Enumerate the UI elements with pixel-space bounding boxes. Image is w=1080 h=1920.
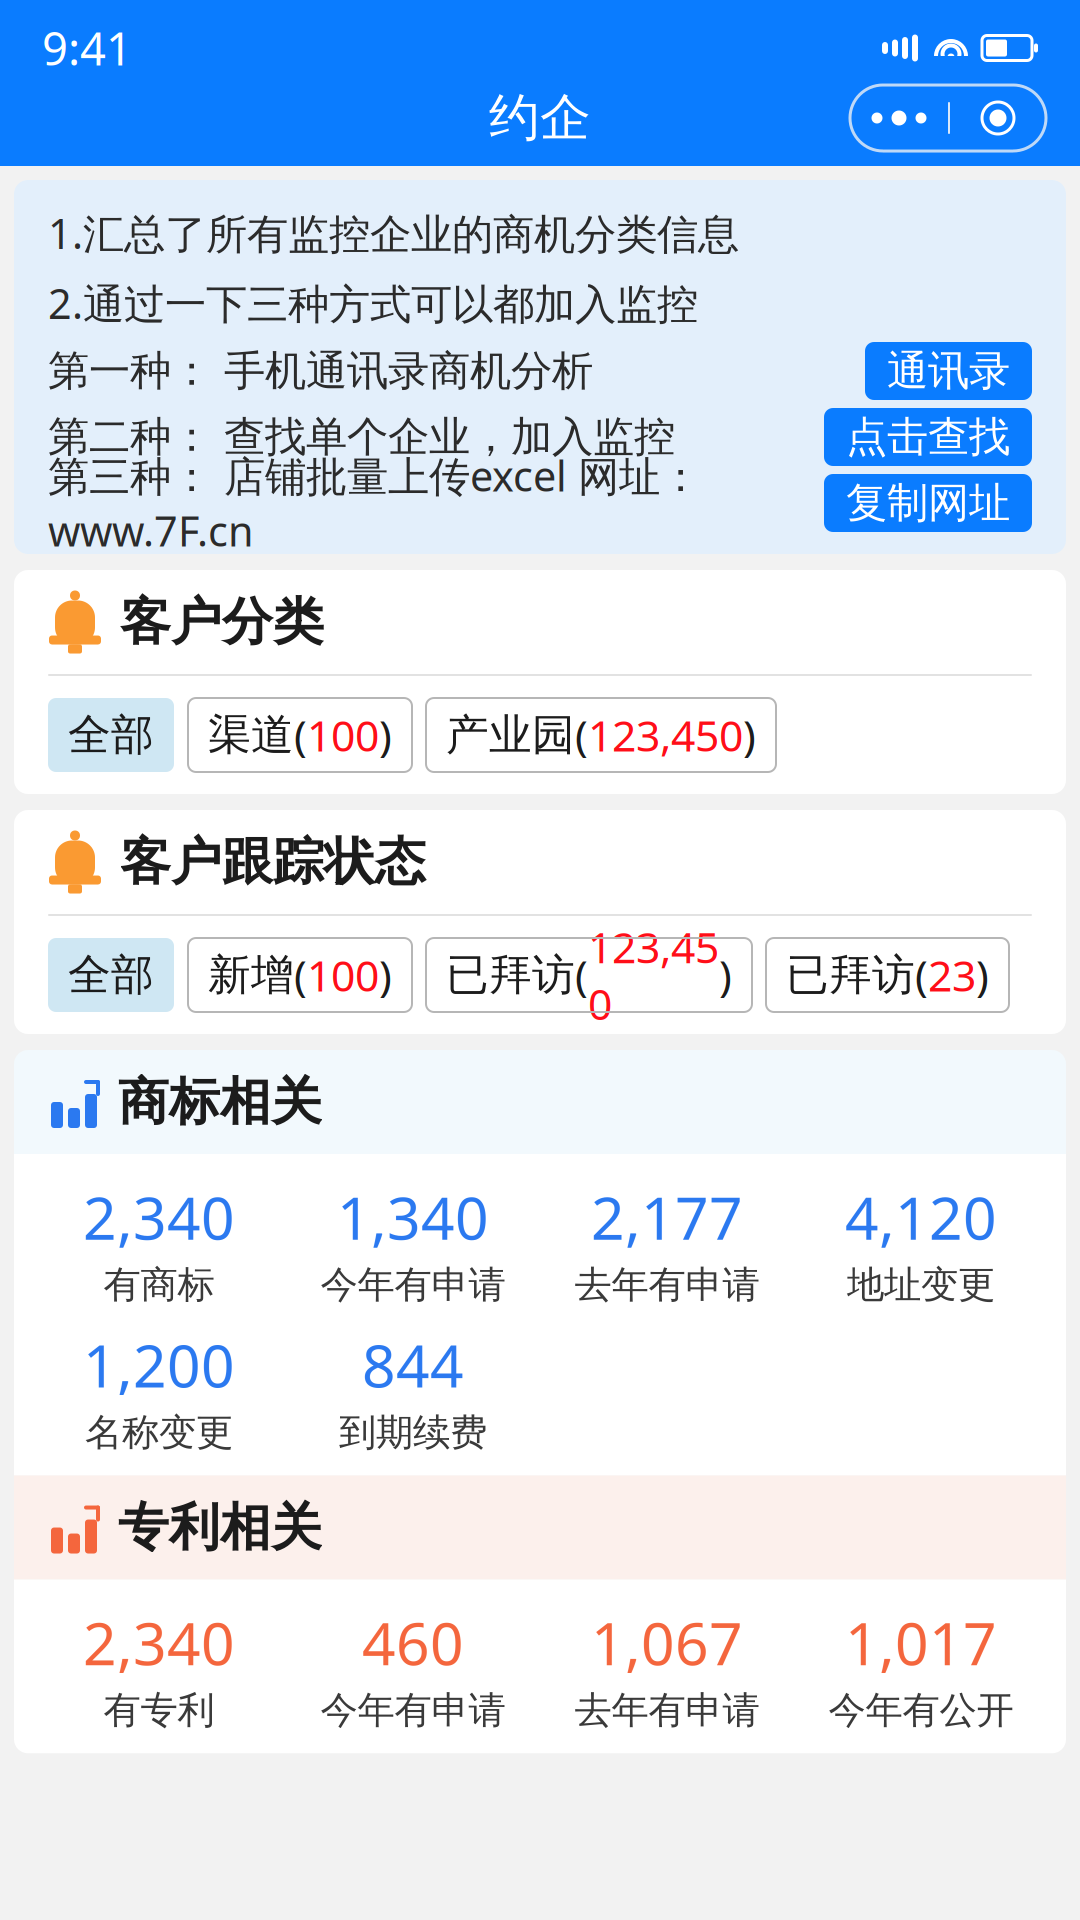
- button[interactable]: 全部: [48, 698, 174, 772]
- staticText: ): [976, 947, 989, 1003]
- staticText: 1.汇总了所有监控企业的商机分类信息: [48, 206, 739, 260]
- staticText: 通讯录: [887, 346, 1010, 396]
- staticText: 全部: [68, 949, 154, 1001]
- button[interactable]: 已拜访: [766, 938, 1009, 1012]
- staticText: 第三种： 店铺批量上传excel 网址： www.7F.cn: [48, 448, 701, 558]
- button[interactable]: Target: [950, 85, 1046, 151]
- button[interactable]: 通讯录: [865, 342, 1032, 400]
- staticText: 第二种： 查找单个企业，加入监控: [48, 412, 675, 462]
- staticText: 9:41: [42, 18, 132, 78]
- staticText: 2,340: [83, 1178, 235, 1256]
- button[interactable]: 产业园: [426, 698, 776, 772]
- staticText: 1,017: [845, 1603, 997, 1681]
- staticText: 100: [307, 947, 379, 1003]
- staticText: 1,340: [337, 1178, 489, 1256]
- button[interactable]: 全部: [48, 938, 174, 1012]
- staticText: 新增: [208, 949, 294, 1001]
- staticText: 460: [362, 1603, 464, 1681]
- staticText: 到期续费: [339, 1410, 487, 1456]
- staticText: 2.通过一下三种方式可以都加入监控: [48, 276, 698, 330]
- staticText: 有专利: [103, 1687, 214, 1733]
- staticText: ): [379, 947, 392, 1003]
- staticText: 渠道: [208, 709, 294, 761]
- staticText: 去年有申请: [574, 1687, 759, 1733]
- staticText: ): [743, 707, 756, 763]
- staticText: ): [719, 947, 732, 1003]
- staticText: 点击查找: [846, 412, 1010, 462]
- staticText: (: [294, 707, 307, 763]
- staticText: 今年有申请: [320, 1687, 505, 1733]
- staticText: 约企: [489, 87, 591, 149]
- staticText: 已拜访: [446, 949, 575, 1001]
- staticText: (: [915, 947, 928, 1003]
- staticText: 客户分类: [120, 591, 324, 653]
- button[interactable]: More: [850, 85, 948, 151]
- staticText: 2,177: [591, 1178, 743, 1256]
- staticText: (: [294, 947, 307, 1003]
- button[interactable]: 已拜访: [426, 938, 752, 1012]
- button[interactable]: 新增: [188, 938, 412, 1012]
- staticText: 1,067: [591, 1603, 743, 1681]
- staticText: 123,450: [588, 918, 719, 1032]
- staticText: 商标相关: [118, 1071, 322, 1133]
- staticText: 全部: [68, 709, 154, 761]
- staticText: 1,200: [83, 1326, 235, 1404]
- staticText: 复制网址: [846, 478, 1010, 528]
- staticText: 4,120: [845, 1178, 997, 1256]
- staticText: (: [575, 947, 588, 1003]
- staticText: 第一种： 手机通讯录商机分析: [48, 346, 593, 396]
- staticText: 123,450: [588, 707, 743, 763]
- staticText: 今年有公开: [828, 1687, 1013, 1733]
- staticText: 23: [928, 947, 976, 1003]
- staticText: 地址变更: [847, 1262, 995, 1308]
- staticText: ): [379, 707, 392, 763]
- staticText: 客户跟踪状态: [120, 831, 426, 893]
- staticText: 去年有申请: [574, 1262, 759, 1308]
- button[interactable]: 复制网址: [824, 474, 1032, 532]
- staticText: 2,340: [83, 1603, 235, 1681]
- button[interactable]: 渠道: [188, 698, 412, 772]
- staticText: 844: [362, 1326, 464, 1404]
- staticText: 有商标: [103, 1262, 214, 1308]
- staticText: 今年有申请: [320, 1262, 505, 1308]
- staticText: 100: [307, 707, 379, 763]
- staticText: 专利相关: [118, 1496, 322, 1559]
- staticText: 产业园: [446, 709, 575, 761]
- staticText: (: [575, 707, 588, 763]
- staticText: 已拜访: [786, 949, 915, 1001]
- button[interactable]: 点击查找: [824, 408, 1032, 466]
- staticText: 名称变更: [85, 1410, 233, 1456]
